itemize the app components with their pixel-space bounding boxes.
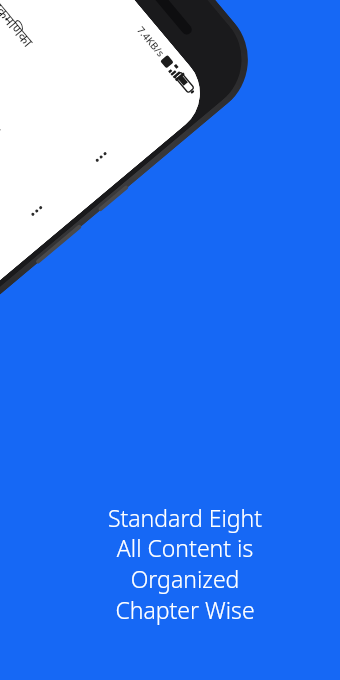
button[interactable]: More options — [79, 134, 124, 179]
staticText: NCERT — [0, 2, 3, 41]
staticText: पाठ 1: परिमेय संख्याएँ — [0, 42, 4, 141]
button[interactable]: पाठ 2: एक चर वाले रैखिक समीकरण — [0, 17, 24, 314]
staticText: Standard Eight All Content is Organized … — [46, 502, 324, 626]
staticText: अनुक्रमणिका — [0, 0, 38, 51]
button[interactable]: पाठ 1: परिमेय संख्याएँ — [0, 0, 88, 260]
button[interactable]: अनुक्रमणिका — [0, 0, 153, 206]
button[interactable]: More options — [14, 188, 59, 233]
staticText: 7.4KB/s — [134, 23, 168, 60]
